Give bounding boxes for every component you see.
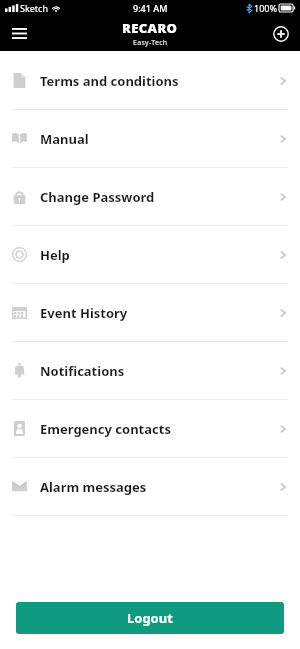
staticText: Emergency contacts bbox=[40, 420, 171, 438]
staticText: Manual bbox=[40, 130, 89, 148]
staticText: Help bbox=[40, 246, 70, 264]
button[interactable]: Logout bbox=[16, 602, 284, 634]
staticText: Alarm messages bbox=[40, 478, 147, 496]
staticText: Change Password bbox=[40, 188, 155, 206]
staticText: Sketch bbox=[20, 2, 48, 14]
button[interactable]: Help bbox=[0, 226, 300, 283]
staticText: 100% bbox=[254, 2, 277, 14]
button[interactable]: Add bbox=[262, 16, 300, 51]
staticText: Logout bbox=[127, 609, 173, 627]
button[interactable]: Event History bbox=[0, 284, 300, 341]
staticText: Notifications bbox=[40, 362, 125, 380]
staticText: Easy-Tech bbox=[133, 38, 168, 48]
staticText: 9:41 AM bbox=[133, 2, 168, 14]
staticText: Terms and conditions bbox=[40, 72, 179, 90]
button[interactable]: Manual bbox=[0, 110, 300, 167]
button[interactable]: Notifications bbox=[0, 342, 300, 399]
staticText: Event History bbox=[40, 304, 128, 322]
button[interactable]: Emergency contacts bbox=[0, 400, 300, 457]
button[interactable]: Change Password bbox=[0, 168, 300, 225]
button[interactable]: Terms and conditions bbox=[0, 52, 300, 109]
staticText: RECARO bbox=[122, 19, 178, 37]
button[interactable]: Menu bbox=[0, 16, 38, 51]
button[interactable]: Alarm messages bbox=[0, 458, 300, 515]
